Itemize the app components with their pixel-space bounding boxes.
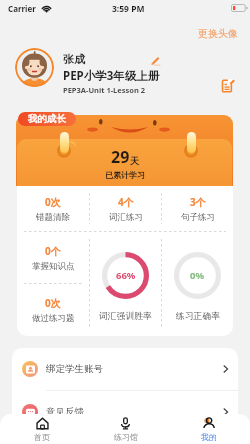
button[interactable]: 首页 — [0, 414, 84, 444]
staticText: 错题清除 — [36, 212, 70, 223]
staticText: 词汇强训胜率 — [99, 311, 152, 322]
staticText: 0次 — [45, 195, 61, 209]
button[interactable]: 意见反馈 — [12, 391, 238, 433]
staticText: 掌握知识点 — [32, 261, 75, 272]
staticText: 4个 — [118, 195, 134, 209]
button[interactable]: 练习馆 — [84, 414, 167, 444]
staticText: 已累计学习 — [105, 170, 145, 180]
button[interactable]: 切换教材 — [222, 79, 235, 92]
staticText: 0个 — [45, 244, 61, 258]
button[interactable]: 0次 — [17, 284, 89, 336]
button[interactable]: 绑定学生账号 — [12, 348, 238, 390]
staticText: 首页 — [34, 432, 50, 442]
button[interactable]: 0次 — [17, 186, 89, 231]
button[interactable]: 3个 — [162, 186, 233, 231]
staticText: 练习正确率 — [176, 311, 220, 322]
staticText: 意见反馈 — [46, 406, 84, 418]
button[interactable]: 我的 — [167, 414, 250, 444]
staticText: Carrier — [8, 3, 36, 14]
staticText: 练习馆 — [114, 432, 138, 442]
button[interactable]: 0个 — [17, 232, 89, 283]
button[interactable]: 更换头像 — [198, 27, 238, 40]
staticText: 天 — [130, 155, 139, 166]
staticText: 我的成长 — [28, 113, 66, 125]
button[interactable]: 我的成长 — [18, 112, 76, 126]
staticText: 我的 — [201, 432, 217, 442]
staticText: 0次 — [45, 296, 61, 310]
staticText: 29 — [111, 146, 130, 168]
staticText: 66% — [116, 269, 136, 282]
button[interactable]: 编辑昵称 — [150, 55, 161, 66]
button[interactable]: 66% — [90, 232, 161, 336]
button[interactable]: 4个 — [90, 186, 161, 231]
staticText: 做过练习题 — [32, 313, 75, 324]
button[interactable]: 头像 — [15, 48, 54, 87]
staticText: PEP3A-Unit 1-Lesson 2 — [63, 85, 146, 95]
button[interactable]: 0% — [162, 232, 233, 336]
staticText: 0% — [190, 269, 205, 282]
staticText: 句子练习 — [181, 212, 215, 223]
staticText: 绑定学生账号 — [46, 363, 103, 375]
staticText: 3个 — [190, 195, 206, 209]
staticText: 词汇练习 — [109, 212, 143, 223]
staticText: PEP小学3年级上册 — [63, 68, 160, 84]
staticText: 3:59 PM — [112, 3, 145, 15]
staticText: 张成 — [63, 52, 85, 66]
